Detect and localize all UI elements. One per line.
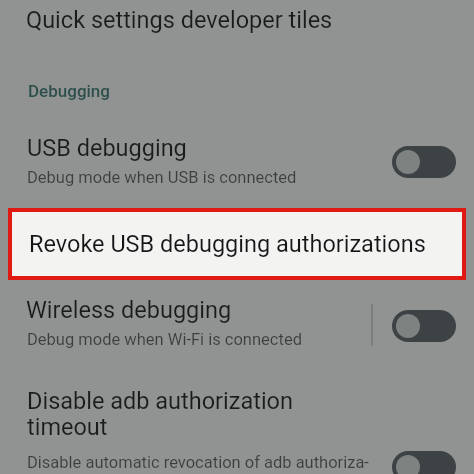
button[interactable] [392,451,456,474]
button[interactable] [392,310,456,342]
staticText: Debug mode when Wi-Fi is connected [27,330,302,349]
staticText: Disable automatic revocation of adb auth… [27,453,369,472]
button[interactable]: USB debugging [27,134,187,162]
staticText: Revoke USB debugging authorizations [29,230,426,258]
button[interactable] [392,146,456,178]
button[interactable]: Disable adb authorization timeout [27,387,293,440]
staticText: Debugging [28,81,110,101]
button[interactable]: Quick settings developer tiles [26,6,333,34]
button[interactable]: Revoke USB debugging authorizations [8,208,466,280]
staticText: Debug mode when USB is connected [27,168,297,187]
button[interactable]: Wireless debugging [26,296,232,324]
